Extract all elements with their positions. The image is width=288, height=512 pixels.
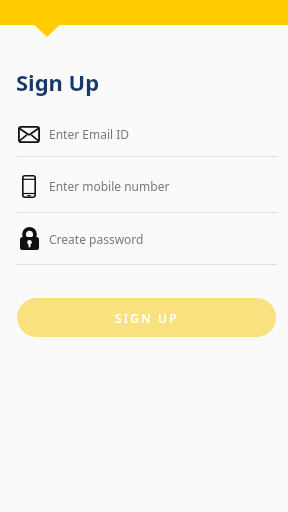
staticText: Enter Email ID [49, 126, 130, 142]
staticText: SIGN UP [115, 310, 179, 326]
staticText: Enter mobile number [49, 178, 170, 194]
staticText: Create password [49, 231, 144, 247]
button[interactable]: Create password [17, 217, 271, 260]
staticText: Sign Up [16, 67, 100, 97]
button[interactable]: SIGN UP [17, 298, 276, 337]
button[interactable]: Enter Email ID [17, 112, 271, 156]
button[interactable]: Enter mobile number [17, 164, 271, 208]
